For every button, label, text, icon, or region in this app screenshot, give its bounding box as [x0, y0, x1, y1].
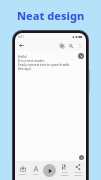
button[interactable]: Play: [43, 164, 56, 177]
button[interactable]: Back: [17, 41, 26, 50]
button[interactable]: Text options: [79, 155, 84, 160]
button[interactable]: Import: [16, 161, 29, 180]
staticText: 4:21: [18, 35, 24, 39]
button[interactable]: Share options: [71, 161, 85, 180]
staticText: Voice settings: [60, 171, 69, 177]
staticText: Hello!: [18, 54, 27, 58]
button[interactable]: More options: [75, 41, 84, 50]
button[interactable]: Copy: [57, 41, 66, 50]
button[interactable]: Search: [66, 41, 75, 50]
button[interactable]: Clear text: [78, 53, 84, 59]
staticText: Font: [33, 173, 38, 176]
button[interactable]: Font: [29, 161, 42, 180]
staticText: Easily convert text to speech with: [18, 62, 70, 66]
staticText: It is a text reader.: [18, 58, 45, 62]
staticText: Share options: [74, 171, 82, 177]
staticText: Import: [19, 173, 27, 176]
staticText: Neat design: [17, 8, 85, 23]
staticText: this app!: [18, 66, 32, 70]
button[interactable]: Voice settings: [57, 161, 71, 180]
